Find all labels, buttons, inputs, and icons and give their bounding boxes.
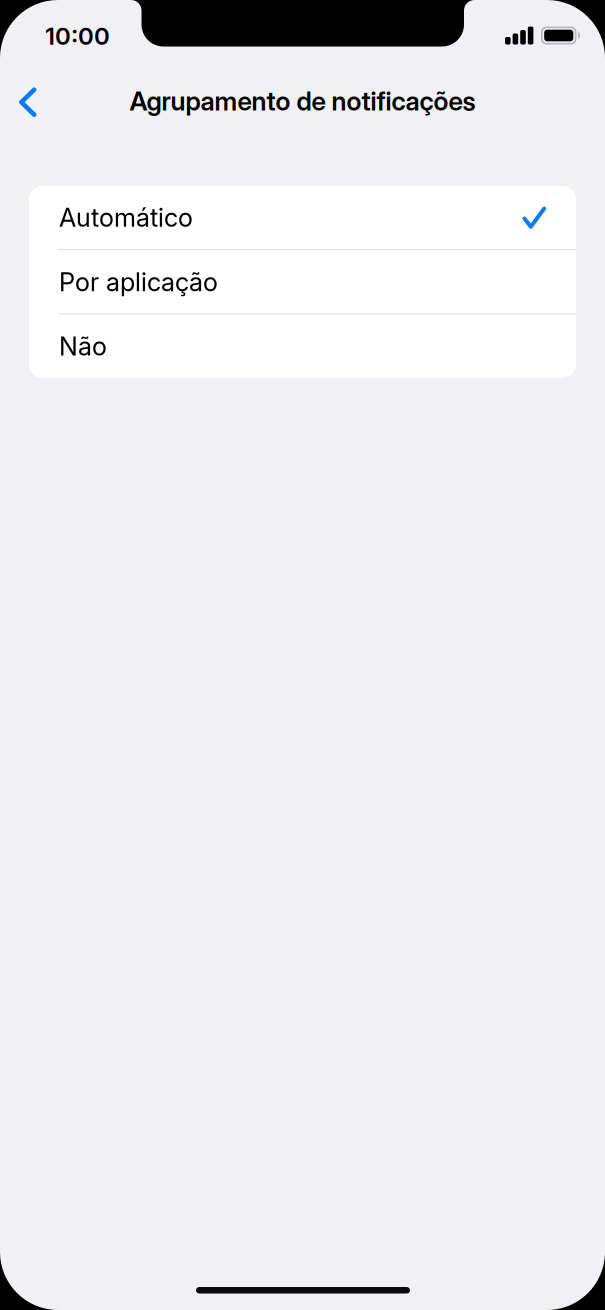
button[interactable]: Back (0, 72, 62, 130)
button[interactable]: Por aplicação (29, 250, 576, 314)
staticText: Automático (59, 202, 193, 233)
staticText: Por aplicação (59, 267, 218, 297)
button[interactable]: Não (29, 315, 576, 378)
staticText: Não (59, 331, 107, 362)
staticText: Agrupamento de notificações (129, 85, 475, 117)
button[interactable]: Automático (29, 186, 576, 249)
staticText: 10:00 (45, 21, 110, 50)
